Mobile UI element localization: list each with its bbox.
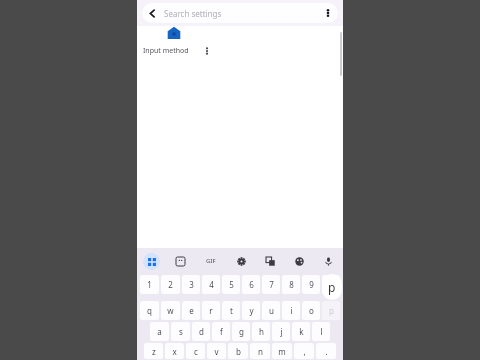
staticText: , — [303, 346, 306, 357]
button[interactable]: Stickers — [172, 253, 189, 270]
button[interactable]: Input method options — [199, 43, 215, 59]
button[interactable]: v — [207, 343, 226, 359]
button[interactable]: 2 — [161, 275, 180, 294]
button[interactable]: k — [292, 322, 310, 341]
button[interactable]: z — [144, 343, 163, 359]
button[interactable]: 3 — [182, 275, 200, 294]
staticText: q — [147, 305, 152, 316]
button[interactable]: Input method — [137, 40, 215, 61]
staticText: 6 — [249, 279, 254, 290]
staticText: b — [236, 346, 241, 357]
staticText: 0 — [329, 279, 334, 290]
button[interactable]: l — [312, 322, 330, 341]
button[interactable]: , — [294, 343, 314, 359]
button[interactable]: p — [322, 301, 340, 320]
button[interactable]: Themes — [291, 253, 308, 270]
staticText: 5 — [229, 279, 234, 290]
button[interactable]: Back — [142, 3, 338, 23]
staticText: z — [152, 346, 156, 357]
staticText: k — [299, 326, 304, 337]
staticText: c — [194, 346, 198, 357]
button[interactable]: y — [242, 301, 260, 320]
staticText: p — [328, 279, 336, 295]
staticText: 3 — [189, 279, 194, 290]
button[interactable]: Back — [142, 3, 162, 23]
button[interactable]: r — [202, 301, 220, 320]
button[interactable]: a — [150, 322, 169, 341]
staticText: w — [167, 305, 174, 316]
button[interactable]: e — [182, 301, 200, 320]
button[interactable]: q — [140, 301, 159, 320]
button[interactable]: s — [171, 322, 190, 341]
button[interactable]: h — [252, 322, 270, 341]
button[interactable]: 4 — [202, 275, 220, 294]
staticText: r — [209, 305, 213, 316]
button[interactable]: Translate — [262, 253, 279, 270]
button[interactable]: i — [282, 301, 300, 320]
staticText: f — [220, 326, 223, 337]
button[interactable]: 8 — [282, 275, 300, 294]
staticText: v — [214, 346, 219, 357]
button[interactable]: t — [222, 301, 240, 320]
button[interactable]: 7 — [262, 275, 280, 294]
staticText: 8 — [289, 279, 294, 290]
button[interactable]: o — [302, 301, 320, 320]
staticText: a — [157, 326, 162, 337]
button[interactable]: More options — [318, 3, 338, 23]
staticText: p — [329, 305, 334, 316]
staticText: y — [249, 305, 254, 316]
staticText: . — [325, 346, 328, 357]
staticText: d — [199, 326, 204, 337]
button[interactable]: 0 — [322, 275, 340, 294]
button[interactable]: . — [316, 343, 336, 359]
button[interactable]: n — [250, 343, 270, 359]
staticText: x — [172, 346, 177, 357]
staticText: Input method — [143, 46, 199, 56]
button[interactable]: 9 — [302, 275, 320, 294]
button[interactable]: 6 — [242, 275, 260, 294]
button[interactable]: m — [272, 343, 292, 359]
staticText: i — [290, 305, 293, 316]
button[interactable]: Voice input — [320, 253, 337, 270]
button[interactable]: x — [165, 343, 184, 359]
staticText: u — [269, 305, 274, 316]
staticText: 4 — [209, 279, 214, 290]
button[interactable]: g — [232, 322, 250, 341]
button[interactable]: 1 — [140, 275, 159, 294]
staticText: GIF — [206, 257, 216, 265]
staticText: t — [230, 305, 233, 316]
staticText: 7 — [269, 279, 274, 290]
staticText: g — [239, 326, 244, 337]
staticText: l — [320, 326, 323, 337]
staticText: Search settings — [164, 8, 318, 19]
staticText: 1 — [147, 279, 152, 290]
button[interactable]: w — [161, 301, 180, 320]
button[interactable]: j — [272, 322, 290, 341]
button[interactable]: b — [228, 343, 248, 359]
button[interactable]: u — [262, 301, 280, 320]
staticText: 9 — [309, 279, 314, 290]
button[interactable]: Settings — [233, 253, 250, 270]
staticText: h — [259, 326, 264, 337]
button[interactable]: f — [212, 322, 230, 341]
staticText: 2 — [168, 279, 173, 290]
button[interactable]: 5 — [222, 275, 240, 294]
staticText: o — [309, 305, 314, 316]
staticText: n — [258, 346, 263, 357]
staticText: m — [278, 346, 286, 357]
button[interactable]: c — [186, 343, 205, 359]
staticText: e — [189, 305, 194, 316]
button[interactable]: Keyboard modes — [143, 253, 160, 270]
staticText: s — [179, 326, 183, 337]
staticText: j — [280, 326, 283, 337]
button[interactable]: GIF — [201, 252, 221, 270]
button[interactable]: d — [192, 322, 210, 341]
